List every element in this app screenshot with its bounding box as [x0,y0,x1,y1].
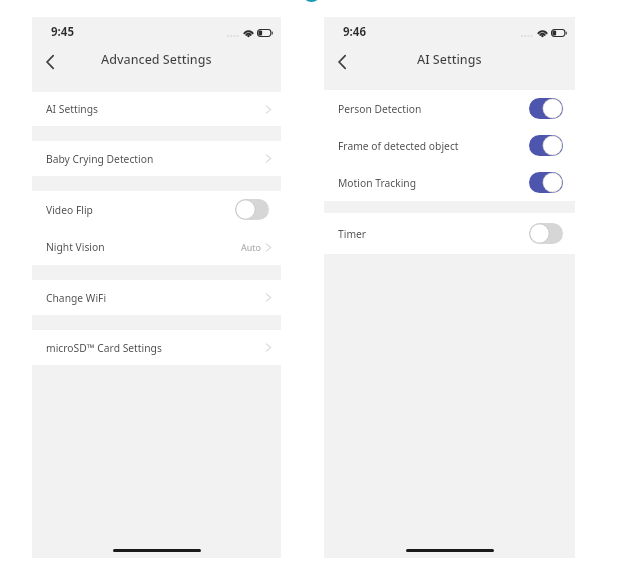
button[interactable]: Toggle on [529,98,563,119]
staticText: AI Settings [417,51,482,68]
button[interactable]: Night Vision [32,228,281,265]
button[interactable]: AI Settings [32,92,281,126]
staticText: AI Settings [46,102,98,116]
button[interactable]: Back [37,49,63,75]
button[interactable]: Timer [324,213,575,254]
staticText: Auto [241,241,262,253]
staticText: microSD™ Card Settings [46,341,162,355]
button[interactable]: microSD™ Card Settings [32,330,281,365]
staticText: Person Detection [338,102,422,116]
staticText: 9:46 [343,24,366,40]
button[interactable]: Toggle off [235,199,269,220]
button[interactable]: Baby Crying Detection [32,141,281,176]
button[interactable]: Change WiFi [32,280,281,315]
staticText: Timer [338,227,367,241]
button[interactable]: Toggle on [529,172,563,193]
button[interactable]: Motion Tracking [324,164,575,201]
button[interactable]: Toggle on [529,135,563,156]
staticText: Night Vision [46,240,105,254]
staticText: 9:45 [51,24,74,40]
staticText: Change WiFi [46,291,107,305]
button[interactable]: Back [329,49,355,75]
staticText: Video Flip [46,203,93,217]
button[interactable]: Frame of detected object [324,127,575,164]
staticText: Frame of detected object [338,139,459,153]
staticText: Advanced Settings [101,51,212,68]
staticText: Motion Tracking [338,176,417,190]
button[interactable]: Toggle off [529,223,563,244]
staticText: Baby Crying Detection [46,152,154,166]
button[interactable]: Video Flip [32,191,281,228]
button[interactable]: Person Detection [324,90,575,127]
